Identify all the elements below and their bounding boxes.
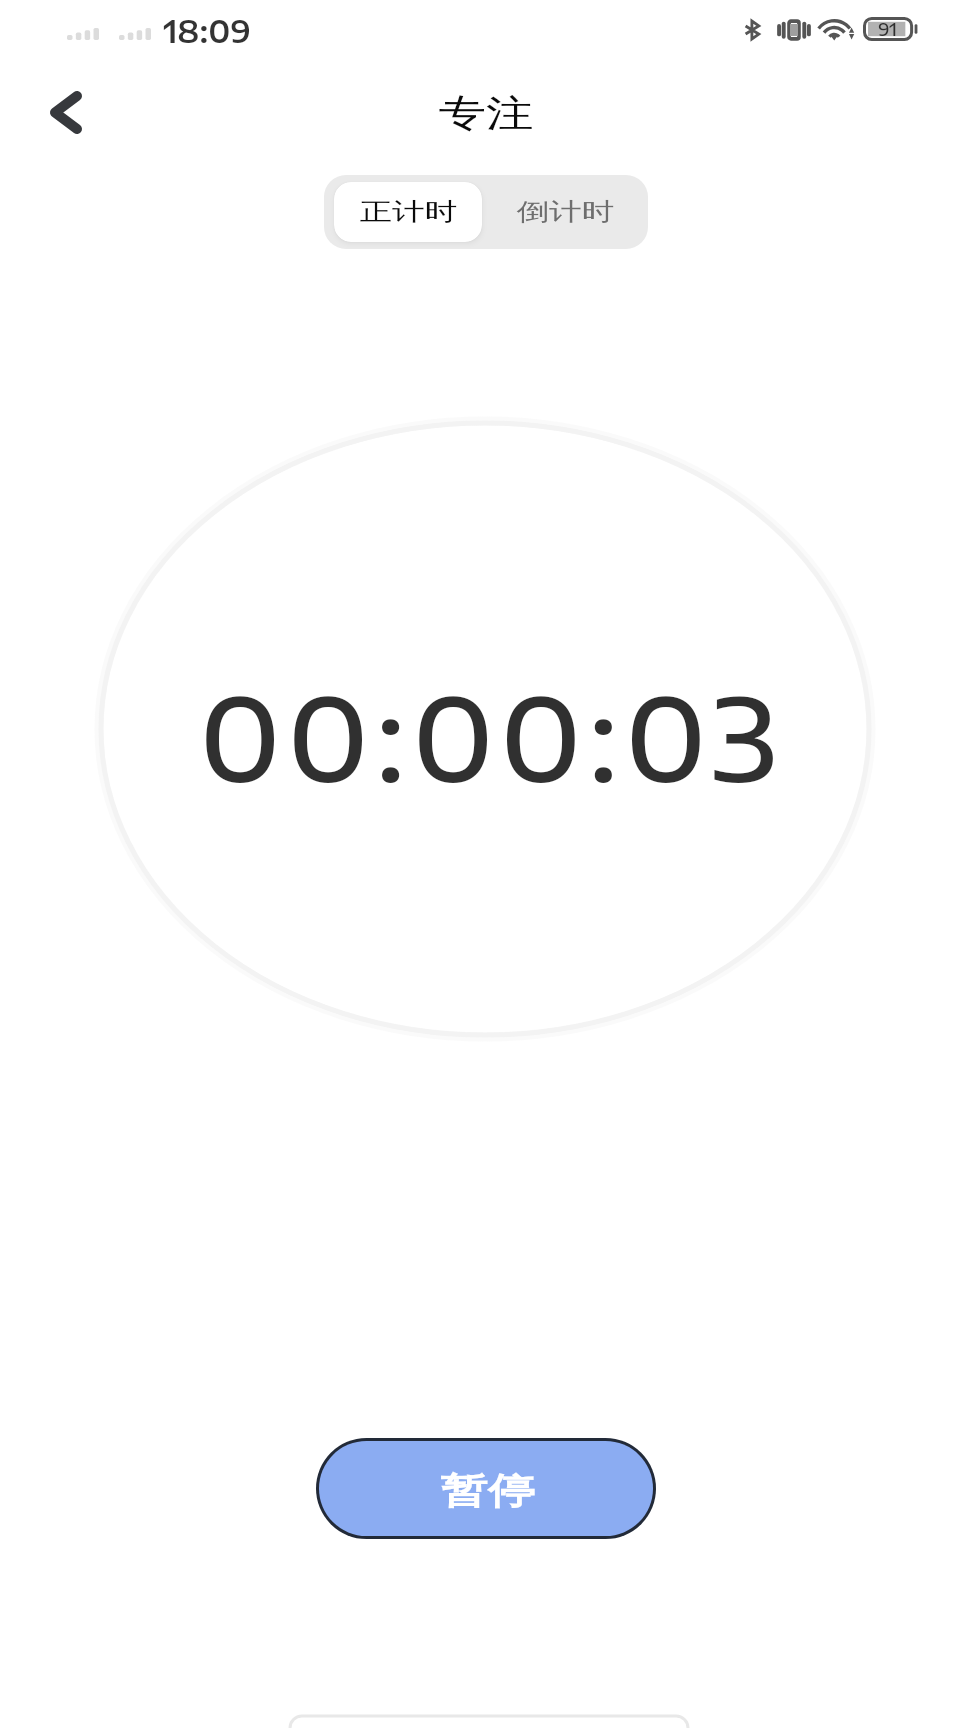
other: Vibrate mode [773,20,815,40]
staticText: 91 [878,18,897,39]
button[interactable]: Back [22,68,110,156]
staticText: 00:00:03 [199,665,783,807]
button[interactable]: 正计时 [334,182,482,242]
staticText: 倒计时 [517,196,614,227]
other: Wi-Fi [822,18,856,41]
other: Battery 91 percent [863,17,919,41]
staticText: 正计时 [360,196,457,227]
staticText: 专注 [438,90,533,137]
other: Bluetooth [745,21,760,39]
staticText: 18:09 [163,12,251,49]
button[interactable]: 暂停 [319,1441,653,1536]
staticText: 暂停 [440,1469,536,1514]
button[interactable]: 倒计时 [482,182,638,242]
